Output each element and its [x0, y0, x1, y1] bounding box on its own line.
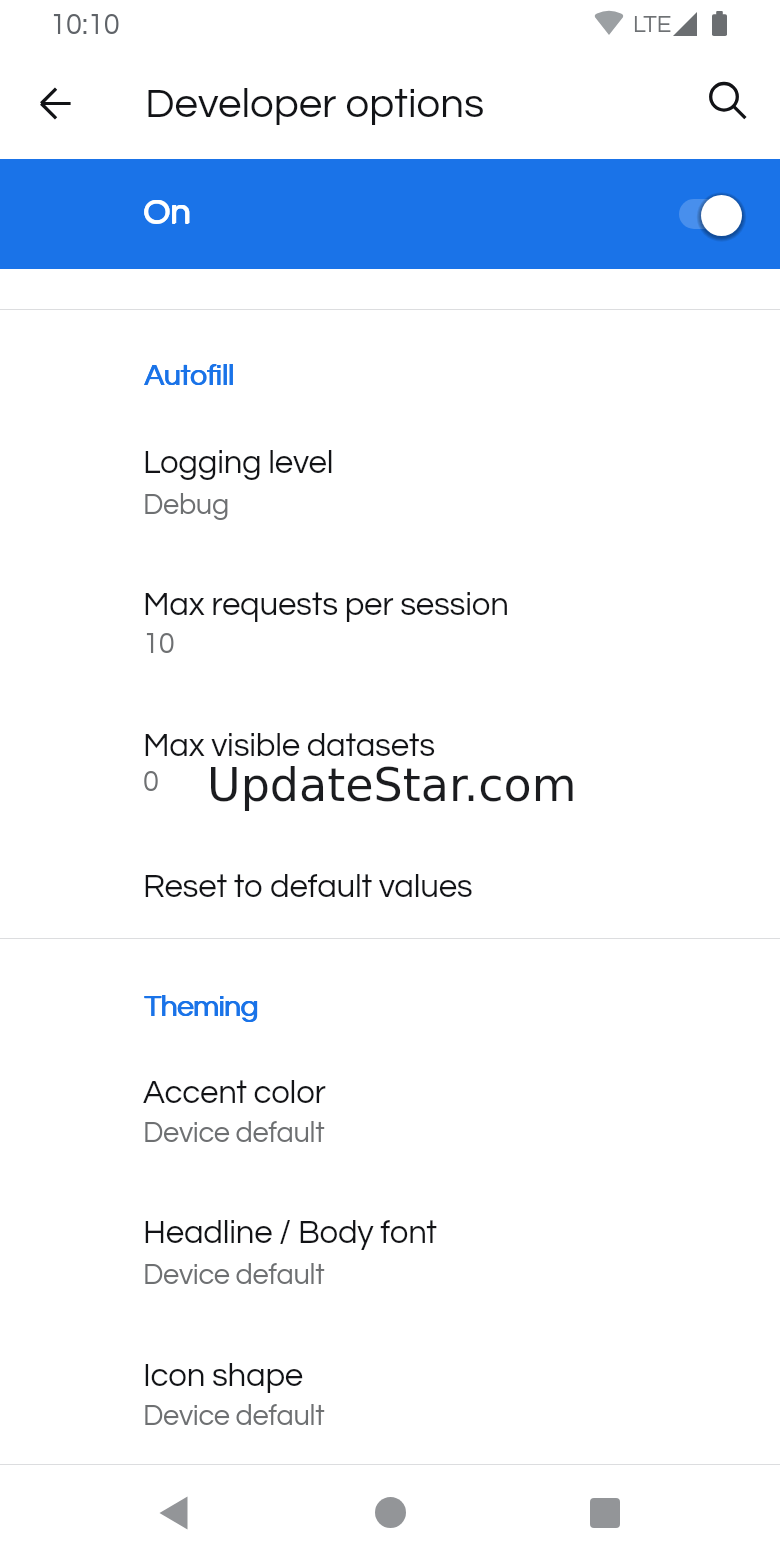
staticText: 10	[143, 629, 175, 659]
staticText: Autofill	[144, 360, 234, 391]
staticText: On	[143, 194, 191, 231]
staticText: LTE	[633, 12, 672, 37]
button[interactable]: Search	[699, 74, 757, 132]
staticText: Headline / Body font	[143, 1216, 437, 1250]
staticText: Device default	[143, 1401, 325, 1431]
staticText: Theming	[144, 991, 258, 1022]
button[interactable]: Icon shape	[0, 1335, 780, 1447]
staticText: UpdateStar.com	[207, 758, 577, 812]
staticText: Developer options	[145, 83, 485, 126]
staticText: Icon shape	[143, 1359, 303, 1393]
button[interactable]: Back	[113, 1465, 233, 1560]
staticText: Logging level	[143, 446, 334, 480]
button[interactable]: Max visible datasets	[0, 706, 780, 818]
staticText: Device default	[143, 1118, 325, 1148]
staticText: Max visible datasets	[143, 729, 436, 763]
staticText: Accent color	[143, 1076, 326, 1110]
staticText: Theming	[144, 991, 258, 1022]
staticText: Autofill	[145, 360, 235, 391]
staticText: Reset to default values	[143, 870, 473, 904]
button[interactable]: Headline / Body font	[0, 1194, 780, 1306]
button[interactable]: Max requests per session	[0, 566, 780, 678]
staticText: On	[143, 193, 191, 230]
staticText: Theming	[145, 991, 259, 1022]
staticText: Autofill	[144, 360, 234, 391]
button[interactable]: On	[0, 159, 780, 269]
staticText: Debug	[143, 490, 229, 520]
staticText: Max requests per session	[143, 588, 509, 622]
button[interactable]: Recent apps	[545, 1465, 665, 1560]
button[interactable]: Home	[330, 1465, 450, 1560]
staticText: 10:10	[50, 10, 120, 40]
button[interactable]: Navigate up	[26, 74, 84, 132]
staticText: 0	[143, 767, 159, 797]
staticText: Device default	[143, 1260, 325, 1290]
button[interactable]: Reset to default values	[0, 845, 780, 917]
button[interactable]: Accent color	[0, 1052, 780, 1164]
staticText: On	[144, 193, 192, 230]
button[interactable]: Logging level	[0, 424, 780, 536]
